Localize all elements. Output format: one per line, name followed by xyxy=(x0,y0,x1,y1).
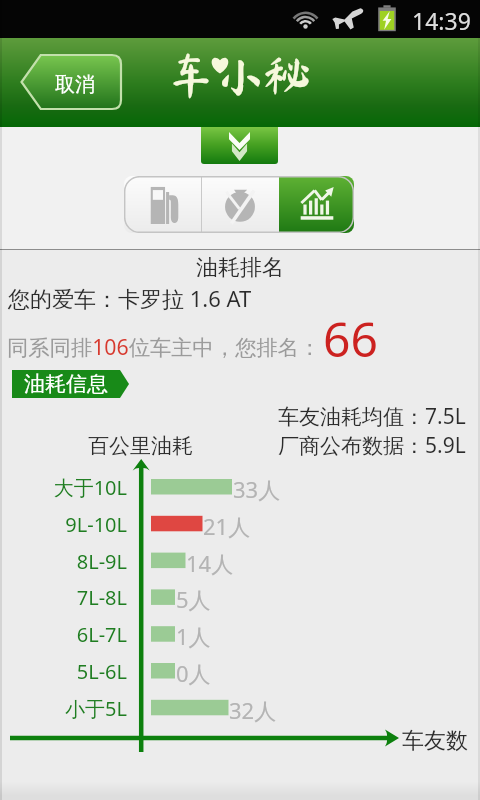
staticText: 车友油耗均值：7.5L xyxy=(278,402,466,431)
staticText: 油耗信息 xyxy=(24,371,108,397)
staticText: 取消 xyxy=(55,72,95,97)
staticText: 14人 xyxy=(186,548,234,578)
staticText: 5人 xyxy=(176,584,211,614)
staticText: 小于5L xyxy=(0,695,127,722)
staticText: 9L-10L xyxy=(0,511,127,538)
button[interactable]: 油耗信息 xyxy=(12,370,120,398)
staticText: 油耗排名 xyxy=(0,254,480,282)
staticText: 百公里油耗 xyxy=(88,433,193,459)
button[interactable]: Fuel log xyxy=(124,176,201,233)
staticText: 21人 xyxy=(203,511,251,541)
button[interactable]: Ranking xyxy=(279,176,354,233)
staticText: 您的爱车：卡罗拉 1.6 AT xyxy=(8,283,252,313)
staticText: 6L-7L xyxy=(0,621,127,648)
staticText: 1人 xyxy=(176,621,211,651)
staticText: 同系同排106位车主中，您排名： xyxy=(7,332,321,361)
staticText: 大于10L xyxy=(0,474,127,501)
button[interactable]: Collapse panel xyxy=(201,127,278,164)
staticText: 33人 xyxy=(233,474,281,504)
button[interactable]: Statistics xyxy=(201,176,279,233)
staticText: 66 xyxy=(323,306,378,371)
staticText: 车友数 xyxy=(402,727,468,755)
button[interactable]: 取消 xyxy=(20,55,121,109)
staticText: 7L-8L xyxy=(0,584,127,611)
staticText: 0人 xyxy=(176,658,211,688)
staticText: 8L-9L xyxy=(0,548,127,575)
staticText: 厂商公布数据：5.9L xyxy=(278,431,466,460)
staticText: 14:39 xyxy=(412,5,471,36)
staticText: 车小秘 xyxy=(167,51,312,99)
staticText: 32人 xyxy=(229,695,277,725)
staticText: 5L-6L xyxy=(0,658,127,685)
